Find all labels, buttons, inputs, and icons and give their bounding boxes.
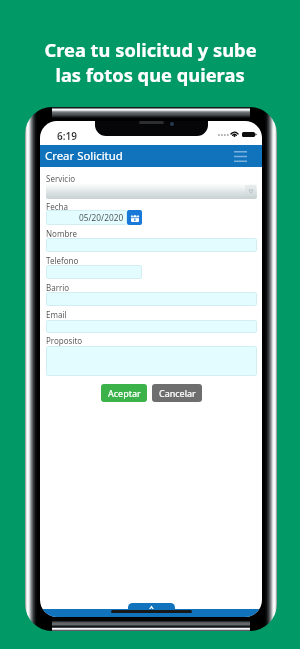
staticText: Aceptar bbox=[108, 387, 141, 399]
button[interactable]: Pick date bbox=[127, 210, 142, 225]
button[interactable]: 05/20/2020 bbox=[46, 210, 127, 225]
staticText: las fotos que quieras bbox=[55, 62, 245, 87]
button[interactable] bbox=[46, 265, 142, 279]
staticText: 05/20/2020 bbox=[79, 212, 124, 223]
staticText: Telefono bbox=[46, 255, 79, 266]
staticText: Email bbox=[46, 309, 67, 320]
staticText: Crea tu solicitud y sube bbox=[44, 37, 257, 62]
staticText: Nombre bbox=[46, 228, 77, 239]
button[interactable] bbox=[46, 346, 257, 376]
staticText: Proposito bbox=[46, 335, 83, 346]
staticText: Fecha bbox=[46, 201, 68, 212]
staticText: Servicio bbox=[46, 173, 76, 184]
button[interactable]: Cancelar bbox=[152, 384, 202, 402]
button[interactable] bbox=[46, 238, 257, 252]
button[interactable] bbox=[46, 292, 257, 306]
staticText: Barrio bbox=[46, 282, 70, 293]
staticText: Crear Solicitud bbox=[45, 148, 123, 164]
staticText: 6:19 bbox=[57, 129, 77, 143]
button[interactable]: Menu bbox=[232, 146, 248, 166]
staticText: Cancelar bbox=[159, 387, 196, 399]
button[interactable]: Expand panel bbox=[128, 603, 175, 609]
button[interactable]: Aceptar bbox=[101, 384, 147, 402]
button[interactable]: Servicio bbox=[46, 184, 257, 199]
button[interactable]: Crear Solicitud bbox=[40, 145, 262, 167]
button[interactable] bbox=[46, 320, 257, 333]
